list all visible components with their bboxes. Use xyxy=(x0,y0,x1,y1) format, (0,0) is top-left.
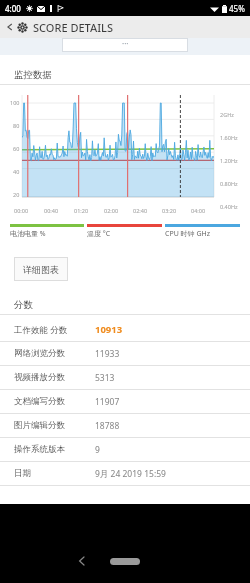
staticText: 工作效能 分数 xyxy=(14,324,68,336)
staticText: 100 xyxy=(10,99,20,106)
button[interactable]: 网络浏览分数 xyxy=(0,342,250,365)
staticText: 00:40 xyxy=(44,207,74,214)
button[interactable]: Home xyxy=(110,558,140,565)
staticText: 视频播放分数 xyxy=(14,372,65,383)
button[interactable]: 工作效能 分数 xyxy=(0,318,250,341)
staticText: 04:00 xyxy=(191,207,220,214)
button[interactable]: 视频播放分数 xyxy=(0,366,250,389)
staticText: 20 xyxy=(13,191,20,198)
staticText: 18788 xyxy=(95,420,120,432)
staticText: 01:20 xyxy=(74,207,104,214)
staticText: 网络浏览分数 xyxy=(14,348,65,359)
staticText: ··· xyxy=(122,38,129,49)
staticText: CPU 时钟 GHz xyxy=(165,229,210,239)
staticText: 操作系统版本 xyxy=(14,444,65,455)
staticText: 4:00 xyxy=(5,3,21,14)
staticText: 1.20Hz xyxy=(220,157,238,164)
button[interactable]: 详细图表 xyxy=(14,257,68,281)
button[interactable]: Back xyxy=(72,551,92,571)
staticText: 45% xyxy=(229,3,245,14)
staticText: SCORE DETAILS xyxy=(33,20,113,35)
staticText: 60 xyxy=(13,145,20,152)
button[interactable]: Back xyxy=(3,20,17,34)
staticText: 5313 xyxy=(95,372,115,384)
staticText: 分数 xyxy=(14,299,33,311)
staticText: 80 xyxy=(13,122,20,129)
staticText: 0.80Hz xyxy=(220,180,238,187)
staticText: 日期 xyxy=(14,468,31,479)
staticText: 电池电量 % xyxy=(10,229,46,239)
staticText: 图片编辑分数 xyxy=(14,420,65,431)
staticText: 11907 xyxy=(95,396,120,408)
staticText: 监控数据 xyxy=(14,69,52,81)
staticText: 9 xyxy=(95,444,100,456)
staticText: 00:00 xyxy=(14,207,44,214)
staticText: 文档编写分数 xyxy=(14,396,65,407)
staticText: 0.40Hz xyxy=(220,203,238,210)
staticText: 温度 °C xyxy=(87,229,111,239)
staticText: 10913 xyxy=(95,323,123,336)
staticText: 2GHz xyxy=(220,111,234,118)
staticText: 1.60Hz xyxy=(220,134,238,141)
staticText: 40 xyxy=(13,168,20,175)
button[interactable]: 操作系统版本 xyxy=(0,438,250,461)
staticText: 03:20 xyxy=(162,207,191,214)
staticText: 详细图表 xyxy=(23,264,59,275)
staticText: 9月 24 2019 15:59 xyxy=(95,468,166,480)
staticText: 02:40 xyxy=(133,207,162,214)
button[interactable]: 图片编辑分数 xyxy=(0,414,250,437)
staticText: 11933 xyxy=(95,348,120,360)
button[interactable]: 文档编写分数 xyxy=(0,390,250,413)
staticText: 02:00 xyxy=(104,207,133,214)
button[interactable]: 日期 xyxy=(0,462,250,485)
